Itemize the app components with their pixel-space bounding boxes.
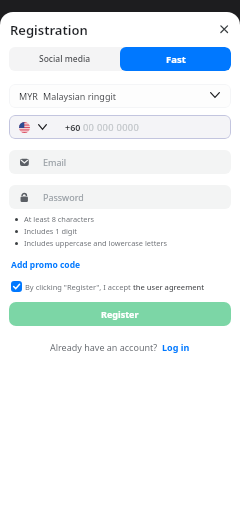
button[interactable]: +60 (9, 115, 231, 139)
button[interactable]: Close (215, 20, 233, 38)
staticText: Register (101, 308, 139, 320)
staticText: Registration (10, 21, 88, 39)
staticText: Already have an account? (50, 341, 158, 353)
button[interactable]: Add promo code (11, 259, 81, 271)
button[interactable]: Social media (9, 47, 120, 71)
staticText: Log in (162, 341, 190, 353)
button[interactable]: Fast (120, 47, 231, 71)
staticText: Email (43, 156, 67, 168)
staticText: MYR (19, 90, 38, 102)
button[interactable]: Password (9, 185, 231, 209)
button[interactable]: Email (9, 150, 231, 174)
staticText: +60 (65, 121, 81, 133)
staticText: Password (43, 191, 84, 203)
staticText: Malaysian ringgit (43, 90, 116, 102)
button[interactable]: Log in (162, 341, 190, 353)
staticText: Includes 1 digit (24, 226, 77, 236)
button[interactable]: Register (9, 302, 231, 326)
staticText: Add promo code (11, 259, 81, 271)
button[interactable]: By clicking "Register", I accept (11, 281, 205, 292)
staticText: 00 000 0000 (83, 121, 139, 134)
staticText: Includes uppercase and lowercase letters (24, 238, 168, 248)
staticText: By clicking "Register", I accept (25, 282, 133, 292)
staticText: Social media (39, 53, 91, 65)
staticText: At least 8 characters (24, 214, 95, 224)
button[interactable]: MYR (9, 84, 231, 108)
staticText: Fast (166, 53, 186, 66)
staticText: the user agreement (133, 282, 205, 292)
